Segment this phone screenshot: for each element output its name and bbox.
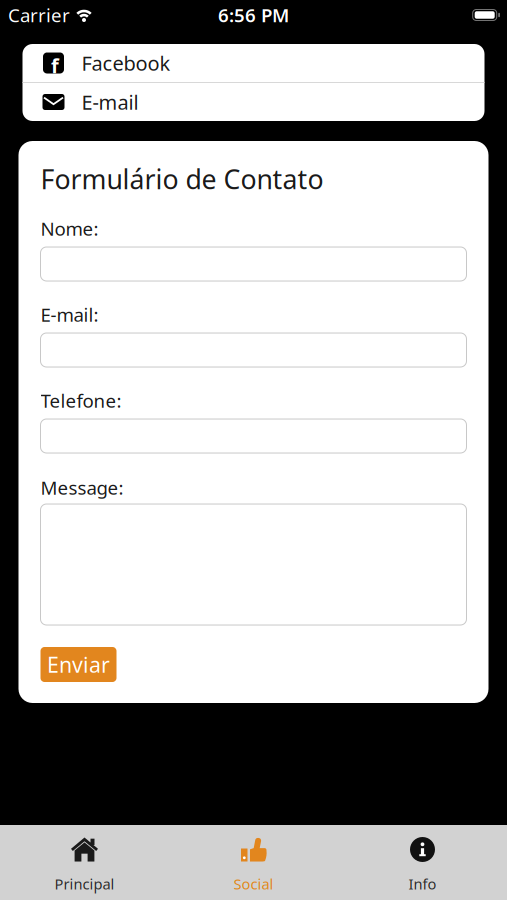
- staticText: Info: [408, 874, 436, 893]
- staticText: f: [51, 52, 59, 79]
- staticText: Social: [233, 874, 273, 893]
- staticText: Formulário de Contato: [40, 161, 323, 197]
- staticText: Facebook: [81, 50, 170, 76]
- staticText: Nome:: [40, 216, 98, 241]
- staticText: 6:56 PM: [218, 3, 289, 27]
- staticText: Principal: [54, 874, 114, 893]
- staticText: E-mail: [81, 89, 138, 115]
- staticText: Carrier: [8, 3, 70, 27]
- staticText: Telefone:: [40, 388, 121, 413]
- staticText: Enviar: [47, 650, 110, 679]
- staticText: Message:: [40, 475, 123, 500]
- staticText: E-mail:: [40, 302, 98, 327]
